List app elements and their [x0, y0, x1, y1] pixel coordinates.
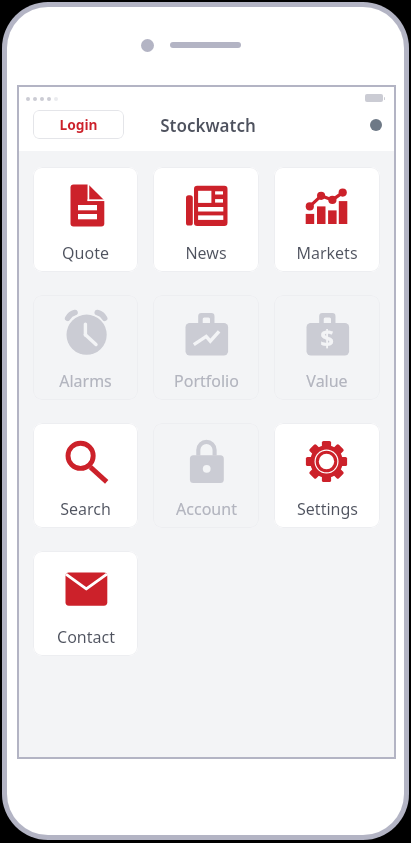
- button[interactable]: Settings: [274, 423, 380, 528]
- button[interactable]: Account: [153, 423, 259, 528]
- staticText: Stockwatch: [160, 114, 256, 137]
- staticText: Search: [60, 498, 111, 520]
- staticText: $: [320, 321, 334, 354]
- button[interactable]: Markets: [274, 167, 380, 272]
- staticText: Settings: [297, 498, 358, 520]
- button[interactable]: Contact: [33, 551, 138, 656]
- staticText: Alarms: [59, 370, 112, 392]
- staticText: Portfolio: [174, 370, 239, 392]
- button[interactable]: News: [153, 167, 259, 272]
- button[interactable]: Login: [33, 110, 124, 139]
- button[interactable]: Profile: [370, 119, 382, 131]
- staticText: Account: [176, 498, 237, 520]
- button[interactable]: Search: [33, 423, 138, 528]
- staticText: Contact: [57, 626, 115, 648]
- button[interactable]: Quote: [33, 167, 138, 272]
- button[interactable]: $: [274, 295, 380, 400]
- button[interactable]: Alarms: [33, 295, 138, 400]
- staticText: Value: [306, 370, 348, 392]
- button[interactable]: Portfolio: [153, 295, 259, 400]
- staticText: Login: [59, 115, 98, 134]
- staticText: News: [185, 242, 227, 264]
- staticText: Quote: [62, 242, 109, 264]
- staticText: Markets: [296, 242, 358, 264]
